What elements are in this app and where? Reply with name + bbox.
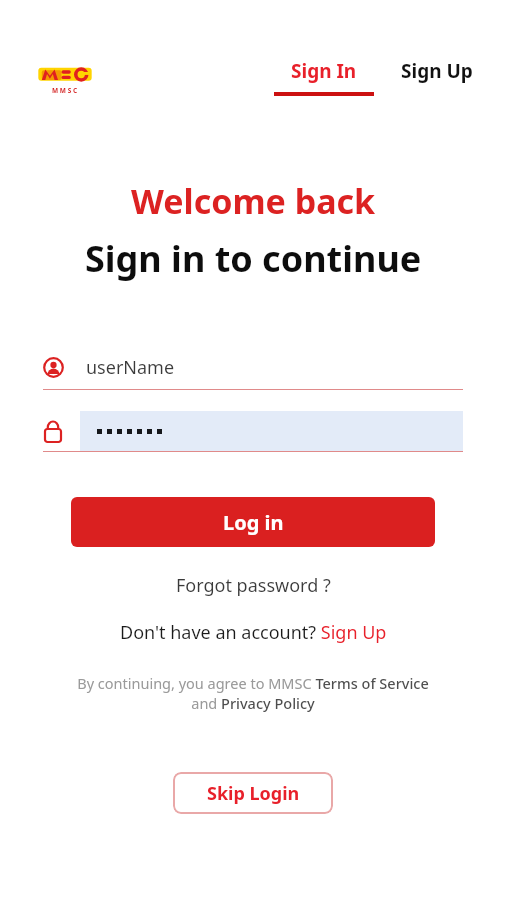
staticText: Sign Up [401,58,473,84]
staticText: By continuing, you agree to MMSC Terms o… [70,673,436,714]
button[interactable]: Log in [71,497,435,547]
button[interactable]: Don't have an account? Sign Up [112,617,395,648]
button[interactable]: MMSC logo [36,62,94,96]
staticText: Don't have an account? Sign Up [120,620,387,645]
button[interactable]: Sign Up [384,58,490,84]
button[interactable]: userName [43,345,463,390]
staticText: Welcome back [131,178,376,224]
staticText: Sign In [291,58,357,84]
button[interactable] [43,411,463,452]
staticText: M M S C [52,86,78,95]
staticText: Sign in to continue [85,234,422,283]
button[interactable]: Forgot password ? [166,570,341,601]
staticText: Log in [223,509,284,536]
staticText: userName [86,355,175,380]
button[interactable]: By continuing, you agree to MMSC Terms o… [70,673,436,714]
staticText: Forgot password ? [176,573,331,598]
staticText: Skip Login [207,781,300,806]
button[interactable]: Sign In [266,58,382,96]
button[interactable]: Skip Login [173,772,333,814]
